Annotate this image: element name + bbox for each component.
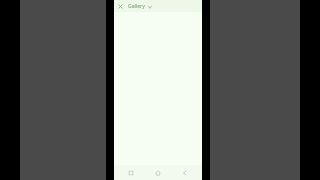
button[interactable]: Gallery (128, 3, 152, 10)
button[interactable]: Close (116, 2, 125, 11)
button[interactable]: Home (148, 165, 168, 180)
button[interactable]: Back (175, 165, 195, 180)
button[interactable]: Recents (121, 165, 141, 180)
staticText: Gallery (128, 3, 145, 10)
